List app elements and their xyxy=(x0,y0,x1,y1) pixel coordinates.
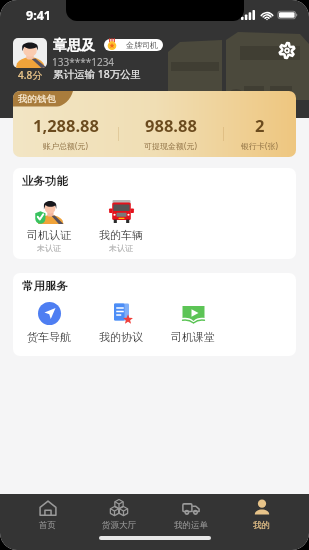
button[interactable]: 首页 xyxy=(12,494,83,532)
staticText: 司机课堂 xyxy=(171,330,215,344)
button[interactable]: 司机认证 xyxy=(13,199,85,253)
staticText: 我的车辆 xyxy=(99,228,143,242)
button[interactable]: 我的 xyxy=(226,494,297,532)
staticText: 988.88 xyxy=(145,114,197,136)
button[interactable]: 988.88 xyxy=(118,114,223,151)
button[interactable]: 我的车辆 xyxy=(85,199,157,253)
staticText: 货源大厅 xyxy=(102,520,136,531)
staticText: 我的钱包 xyxy=(18,93,56,105)
button[interactable]: 货源大厅 xyxy=(83,494,154,532)
staticText: 司机认证 xyxy=(27,228,71,242)
button[interactable]: 1,288.88 xyxy=(13,114,118,151)
staticText: 133****1234 xyxy=(52,55,115,69)
staticText: 我的 xyxy=(253,520,270,531)
staticText: 未认证 xyxy=(109,243,133,253)
staticText: 可提现金额(元) xyxy=(144,140,197,151)
staticText: 金牌司机 xyxy=(126,40,158,50)
button[interactable]: 我的钱包 xyxy=(13,91,296,157)
staticText: 我的协议 xyxy=(99,330,143,344)
staticText: 1,288.88 xyxy=(33,114,99,136)
staticText: 未认证 xyxy=(37,243,61,253)
button[interactable]: 货车导航 xyxy=(13,301,85,344)
staticText: 我的运单 xyxy=(174,520,208,531)
button[interactable]: 我的协议 xyxy=(85,301,157,344)
staticText: 货车导航 xyxy=(27,330,71,344)
staticText: 账户总额(元) xyxy=(43,140,88,151)
staticText: 2 xyxy=(255,114,265,136)
button[interactable]: 司机课堂 xyxy=(157,301,229,344)
button[interactable]: 2 xyxy=(223,114,296,151)
staticText: 累计运输 18万公里 xyxy=(53,67,142,81)
button[interactable]: Settings xyxy=(272,35,302,65)
button[interactable]: Avatar xyxy=(13,38,47,68)
staticText: 首页 xyxy=(39,520,56,531)
staticText: 章思及 xyxy=(53,37,95,55)
staticText: 常用服务 xyxy=(22,279,68,293)
staticText: 9:41 xyxy=(26,7,51,24)
staticText: 银行卡(张) xyxy=(241,140,278,151)
staticText: 4.8分 xyxy=(18,68,43,82)
button[interactable]: 金牌司机 xyxy=(104,39,163,51)
button[interactable]: 我的运单 xyxy=(155,494,226,532)
staticText: 业务功能 xyxy=(22,174,68,188)
